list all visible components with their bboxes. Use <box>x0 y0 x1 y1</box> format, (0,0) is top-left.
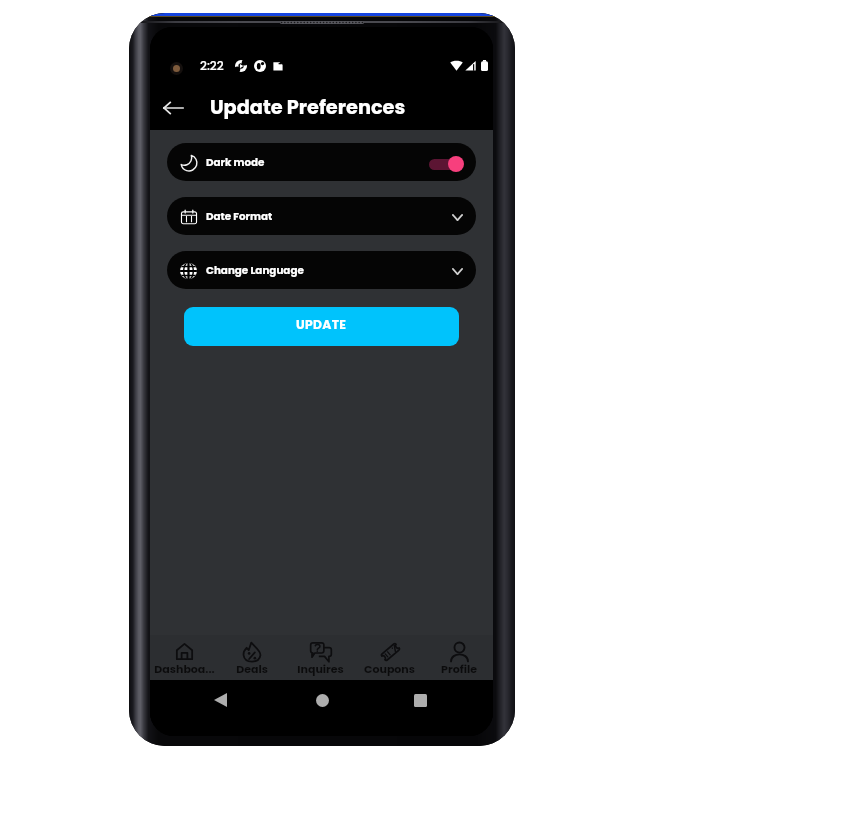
staticText: 2:22 <box>200 57 224 74</box>
staticText: Deals <box>236 661 268 676</box>
staticText: Inquires <box>297 661 344 676</box>
button[interactable]: Recents <box>407 687 433 713</box>
button[interactable]: Date Format <box>167 197 476 235</box>
staticText: Dashboa... <box>154 661 215 676</box>
button[interactable] <box>429 155 463 173</box>
staticText: Update Preferences <box>210 94 406 121</box>
button[interactable]: Inquires <box>286 635 355 680</box>
button[interactable]: Deals <box>218 635 286 680</box>
button[interactable]: Back <box>207 687 233 713</box>
staticText: Dark mode <box>206 155 265 169</box>
button[interactable]: Home <box>309 687 335 713</box>
button[interactable]: Dark mode <box>167 143 476 181</box>
button[interactable]: Change Language <box>167 251 476 289</box>
button[interactable]: Back <box>156 91 190 125</box>
button[interactable]: Coupons <box>355 635 424 680</box>
staticText: Profile <box>441 661 477 676</box>
button[interactable]: UPDATE <box>184 307 459 346</box>
staticText: Date Format <box>206 209 273 223</box>
staticText: UPDATE <box>296 316 347 333</box>
button[interactable]: Dashboa... <box>150 635 218 680</box>
staticText: Coupons <box>364 661 415 676</box>
button[interactable]: Profile <box>424 635 493 680</box>
staticText: Change Language <box>206 263 304 277</box>
